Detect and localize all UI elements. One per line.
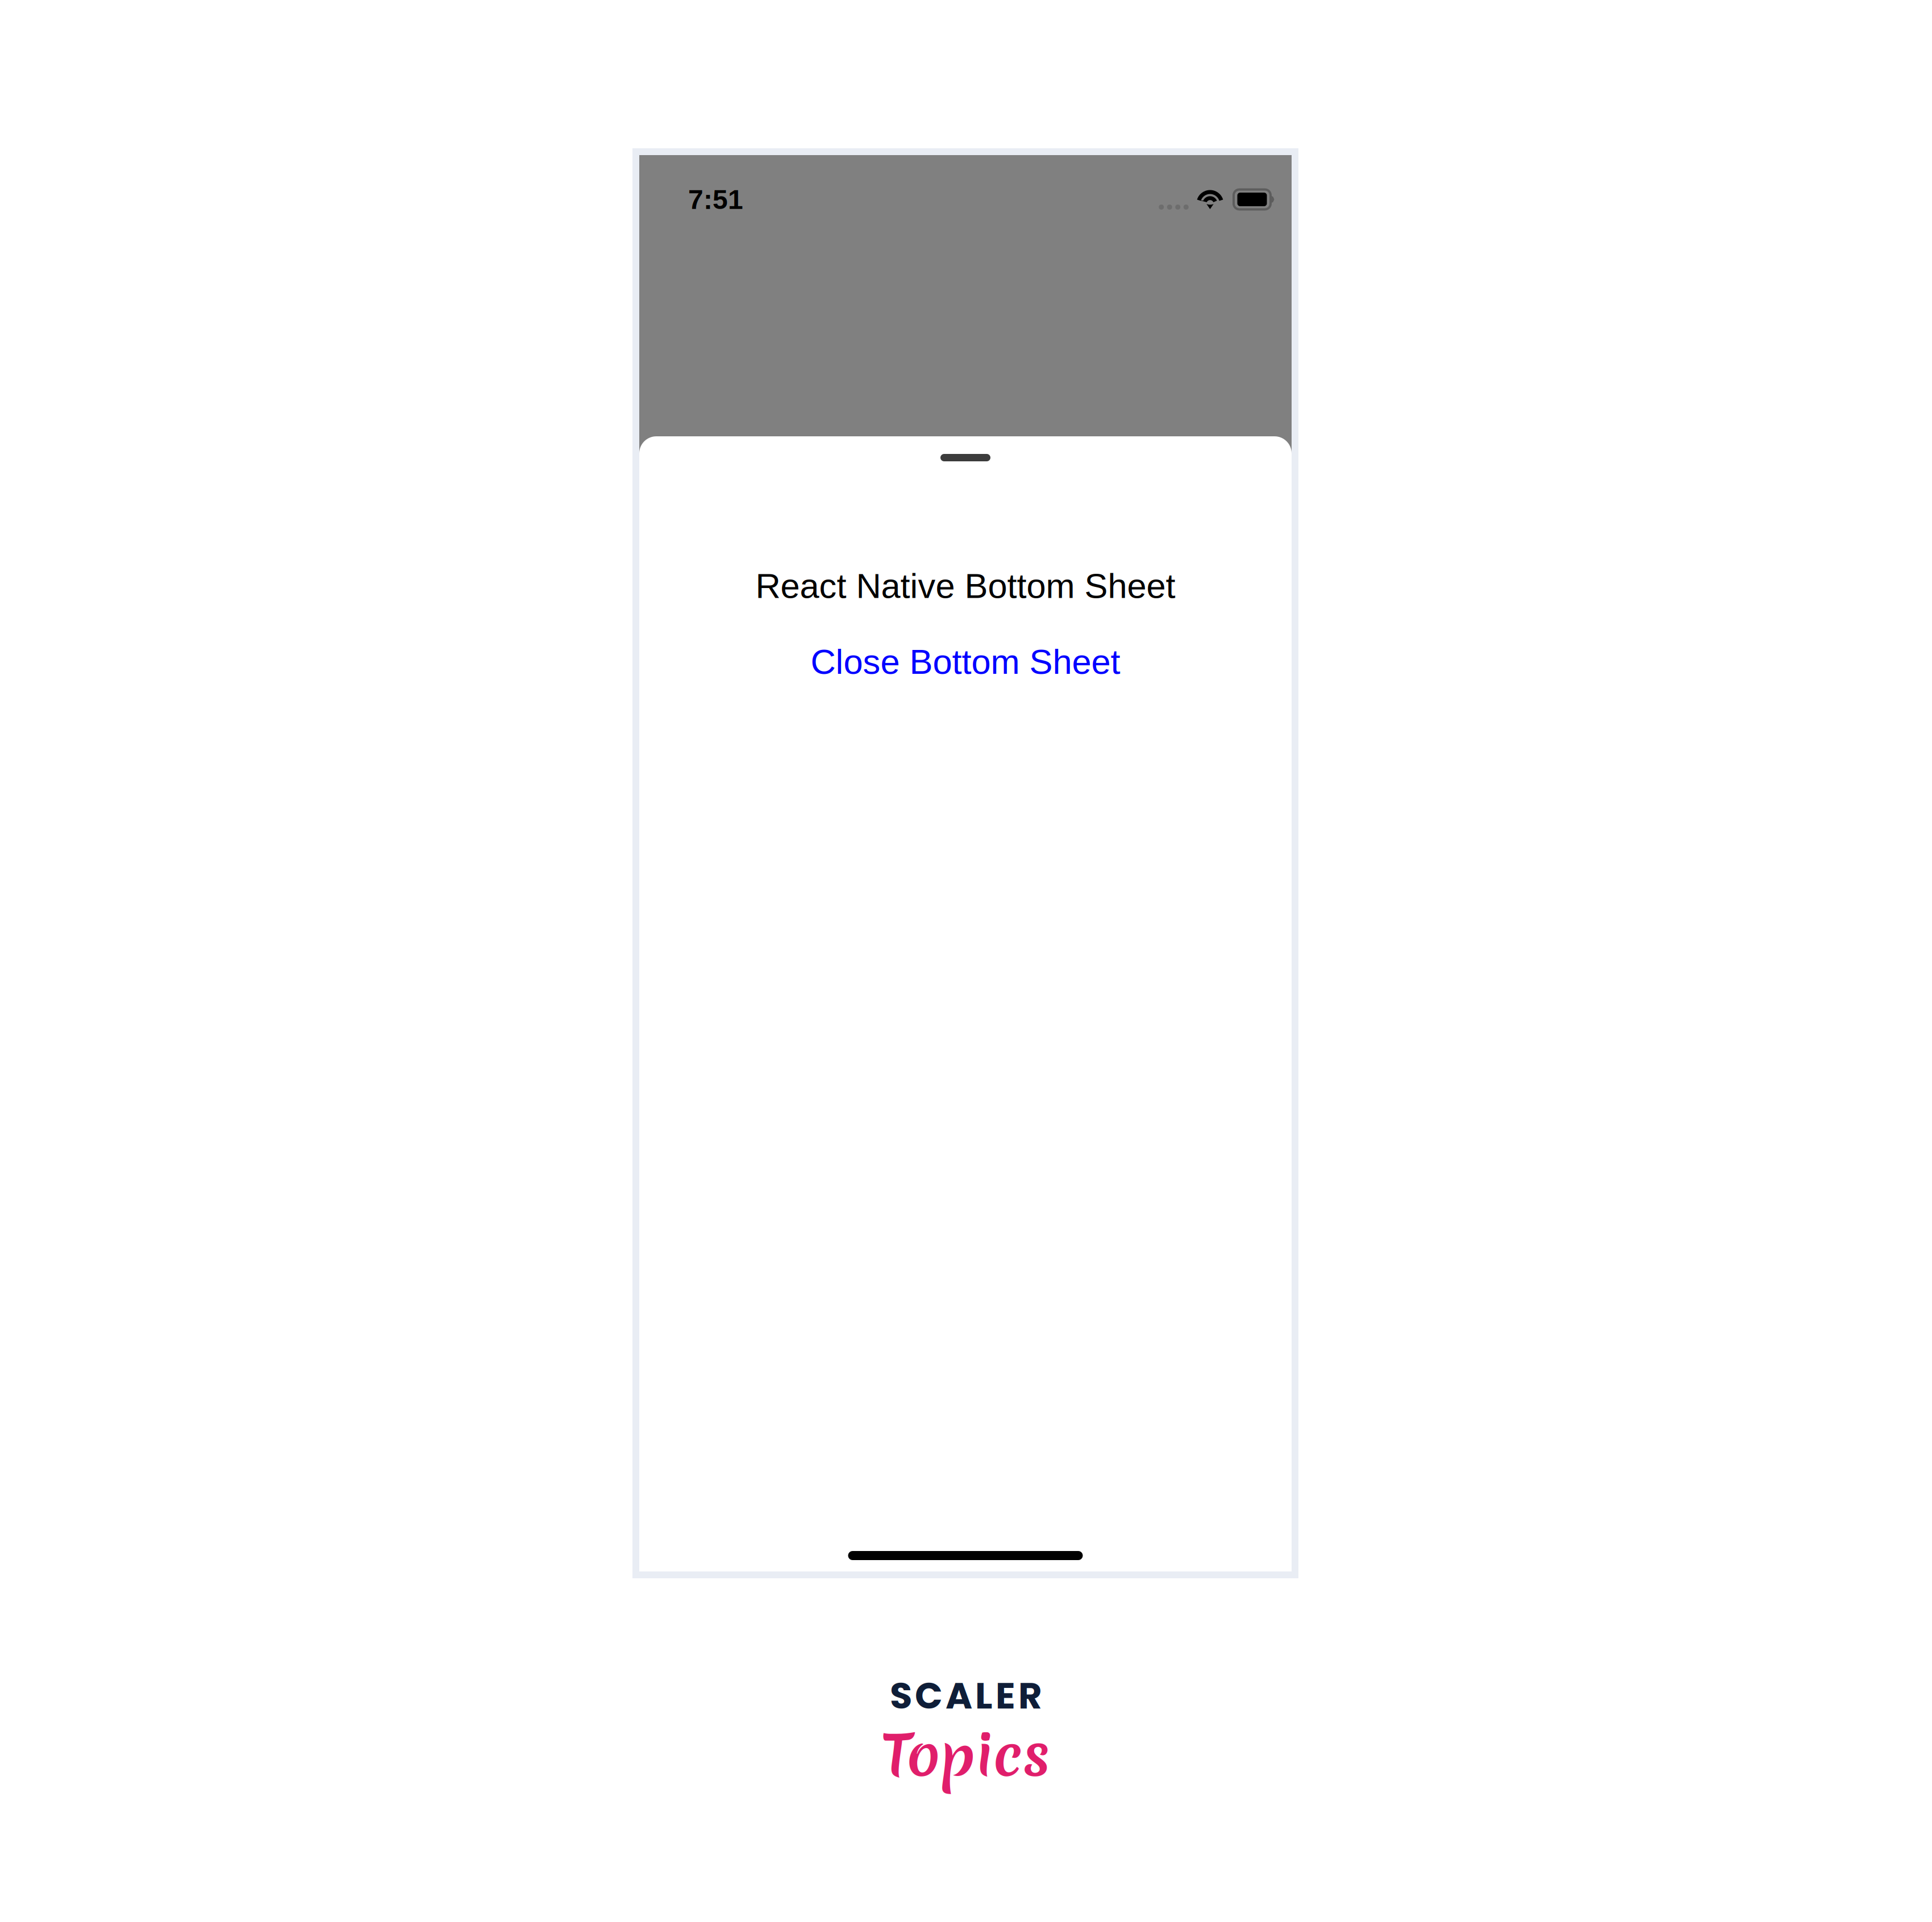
staticText: React Native Bottom Sheet: [755, 566, 1175, 605]
staticText: SCALER: [890, 1670, 1042, 1721]
button[interactable]: Close Bottom Sheet: [788, 634, 1143, 689]
staticText: Topics: [882, 1716, 1050, 1795]
staticText: 7:51: [688, 184, 743, 215]
staticText: Close Bottom Sheet: [811, 642, 1120, 681]
button[interactable]: Drag handle: [906, 436, 1025, 461]
